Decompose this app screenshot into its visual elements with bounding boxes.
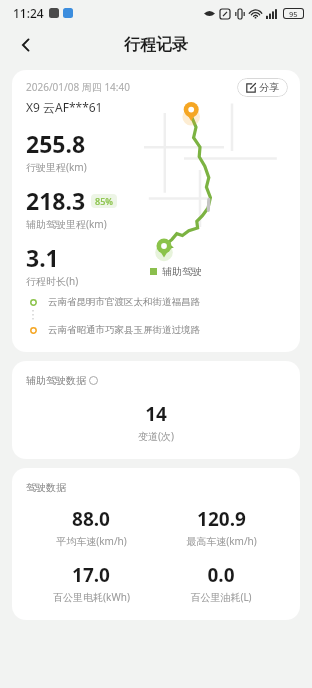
staticText: 分享 — [259, 81, 279, 94]
staticText: 云南省昆明市官渡区太和街道福昌路 — [48, 296, 200, 308]
staticText: 百公里油耗(L) — [190, 590, 252, 604]
staticText: 百公里电耗(kWh) — [53, 590, 130, 604]
staticText: 0.0 — [207, 562, 235, 588]
staticText: 辅助驾驶里程(km) — [26, 217, 107, 231]
staticText: 2026/01/08 周四 14:40 — [26, 80, 130, 94]
staticText: 88.0 — [72, 506, 110, 532]
staticText: 95 — [289, 9, 298, 19]
staticText: 11:24 — [13, 5, 44, 21]
button[interactable]: Back — [8, 27, 44, 63]
staticText: 85% — [95, 195, 113, 207]
staticText: 218.3 — [26, 185, 86, 216]
staticText: 行程时长(h) — [26, 274, 79, 288]
staticText: 平均车速(km/h) — [56, 534, 127, 548]
staticText: X9 云AF***61 — [26, 99, 103, 115]
staticText: 最高车速(km/h) — [186, 534, 257, 548]
staticText: 行程记录 — [124, 35, 188, 55]
staticText: 变道(次) — [138, 429, 174, 443]
staticText: 14 — [145, 401, 167, 427]
staticText: 云南省昭通市巧家县玉屏街道过境路 — [48, 324, 200, 336]
button[interactable]: Info — [89, 376, 98, 385]
staticText: 行驶里程(km) — [26, 160, 87, 174]
staticText: 17.0 — [72, 562, 110, 588]
button[interactable]: 分享 — [237, 78, 288, 97]
staticText: 255.8 — [26, 128, 86, 159]
staticText: 3.1 — [26, 242, 59, 273]
staticText: 驾驶数据 — [26, 481, 66, 494]
staticText: 辅助驾驶数据 — [26, 374, 86, 387]
staticText: 120.9 — [197, 506, 246, 532]
staticText: 辅助驾驶 — [162, 265, 202, 278]
